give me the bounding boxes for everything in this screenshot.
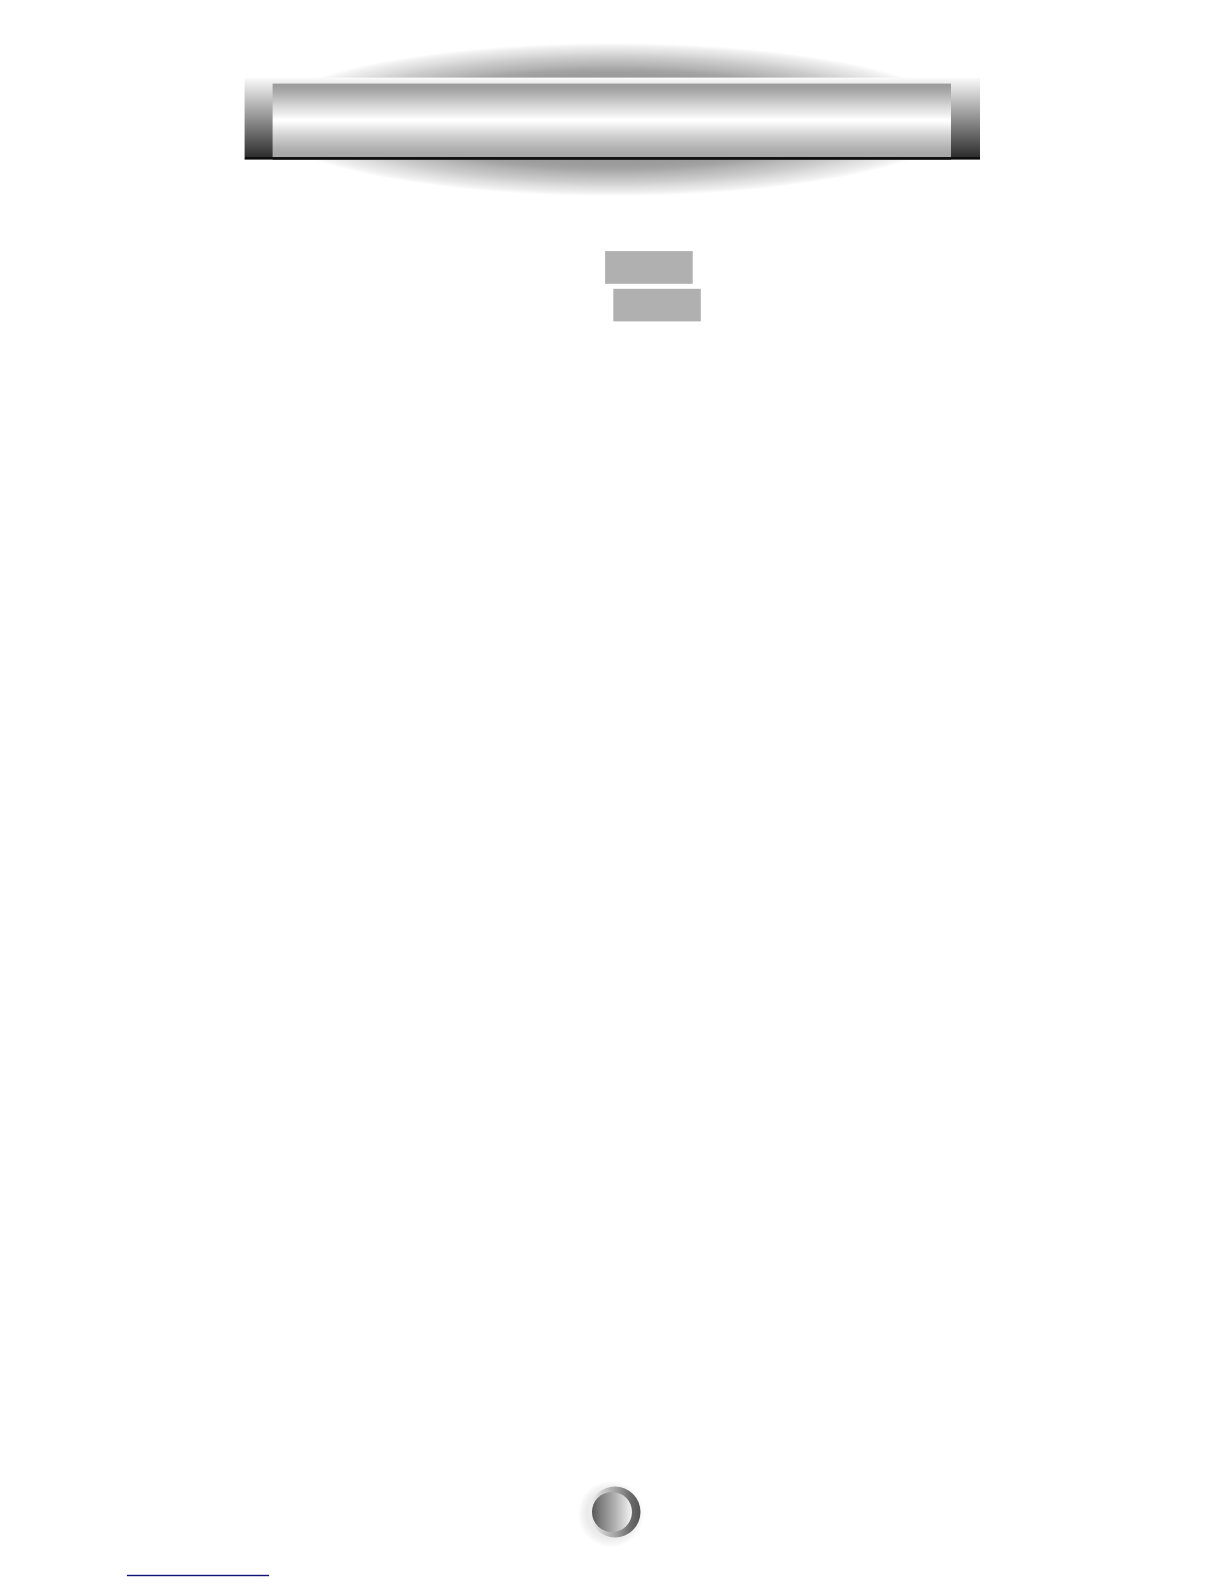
button[interactable]: Round knob button [590,1487,641,1538]
button[interactable]: Metal bar header [245,78,980,160]
button[interactable]: Grey tile two [613,289,701,322]
button[interactable]: Link [127,1567,269,1578]
button[interactable]: Grey tile one [605,251,693,284]
